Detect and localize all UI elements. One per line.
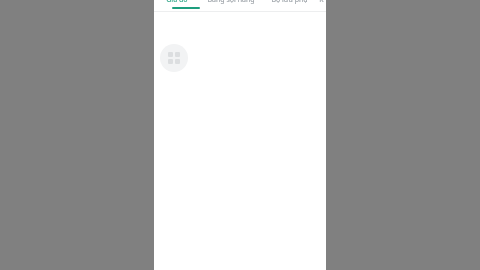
button[interactable]: Apps grid <box>160 44 188 72</box>
staticText: K <box>319 0 324 5</box>
button[interactable]: K <box>316 0 326 5</box>
staticText: Giá đỡ <box>166 0 188 5</box>
staticText: Bộ lưu phụ <box>271 0 308 5</box>
button[interactable]: Băng sợi hàng <box>200 0 262 5</box>
button[interactable]: Giá đỡ <box>154 0 200 5</box>
staticText: Băng sợi hàng <box>207 0 255 5</box>
button[interactable]: Bộ lưu phụ <box>262 0 316 5</box>
